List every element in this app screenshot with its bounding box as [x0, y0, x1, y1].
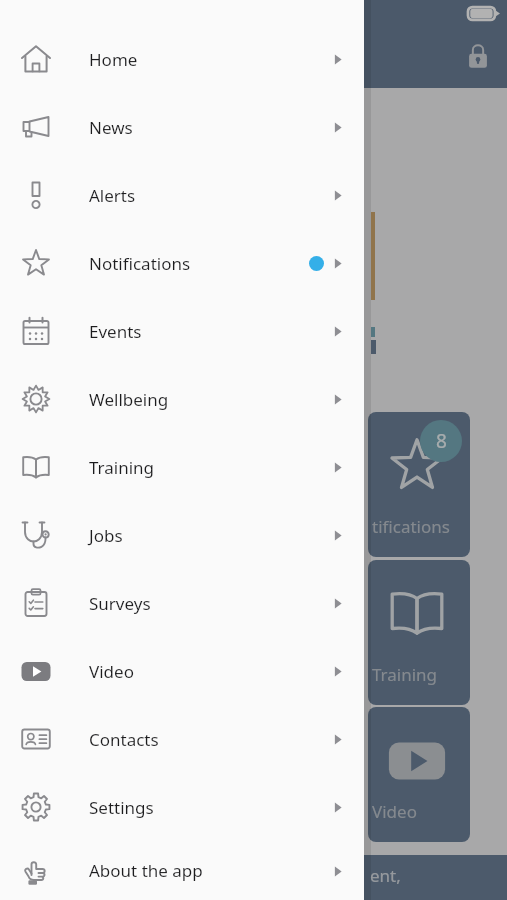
button[interactable]: Video	[368, 707, 470, 842]
button[interactable]: About the app	[0, 841, 364, 900]
button[interactable]: News	[0, 93, 364, 161]
button[interactable]: Training	[0, 433, 364, 501]
staticText: tifications	[372, 515, 450, 538]
button[interactable]: Surveys	[0, 569, 364, 637]
staticText: Home	[89, 48, 138, 71]
staticText: Notifications	[89, 252, 191, 275]
button[interactable]: Jobs	[0, 501, 364, 569]
staticText: Events	[89, 320, 142, 343]
staticText: ent,	[370, 864, 401, 887]
staticText: Settings	[89, 796, 154, 819]
button[interactable]: Home	[0, 25, 364, 93]
staticText: Training	[372, 663, 438, 686]
staticText: About the app	[89, 859, 203, 882]
button[interactable]: 8	[368, 412, 470, 557]
staticText: Wellbeing	[89, 388, 169, 411]
button[interactable]: Video	[0, 637, 364, 705]
staticText: Contacts	[89, 728, 159, 751]
staticText: 8	[436, 428, 447, 454]
staticText: Surveys	[89, 592, 151, 615]
button[interactable]: Lock	[463, 41, 493, 71]
button[interactable]: Events	[0, 297, 364, 365]
button[interactable]: Wellbeing	[0, 365, 364, 433]
staticText: Jobs	[89, 524, 123, 547]
staticText: Video	[372, 800, 417, 823]
button[interactable]: Training	[368, 560, 470, 705]
staticText: News	[89, 116, 133, 139]
staticText: Alerts	[89, 184, 136, 207]
staticText: Video	[89, 660, 134, 683]
button[interactable]: Settings	[0, 773, 364, 841]
button[interactable]: Notifications	[0, 229, 364, 297]
staticText: Training	[89, 456, 155, 479]
button[interactable]: Contacts	[0, 705, 364, 773]
button[interactable]: Alerts	[0, 161, 364, 229]
